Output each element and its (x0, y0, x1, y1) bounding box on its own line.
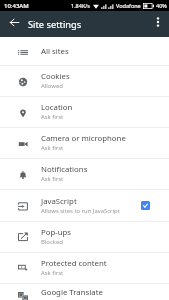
staticText: Vodafone (116, 2, 141, 9)
staticText: Pop-ups (41, 227, 72, 238)
staticText: Ask first (41, 175, 64, 183)
staticText: Allowed (41, 82, 63, 90)
staticText: Site settings (28, 18, 82, 31)
staticText: Location (41, 102, 73, 113)
staticText: 10:43AM (4, 2, 29, 10)
button[interactable]: Location (0, 97, 169, 128)
staticText: Ask first (41, 144, 64, 152)
button[interactable]: Notifications (0, 159, 169, 190)
button[interactable]: All sites (0, 37, 169, 66)
button[interactable]: Google Translate (0, 284, 169, 300)
staticText: Cookies (41, 71, 70, 82)
staticText: JavaScript (41, 196, 77, 207)
staticText: Protected content (41, 258, 107, 269)
staticText: Ask first (41, 269, 64, 277)
button[interactable]: More options (147, 11, 169, 33)
button[interactable]: Protected content (0, 253, 169, 284)
button[interactable]: Enable JavaScript (141, 201, 150, 210)
button[interactable]: Cookies (0, 66, 169, 97)
staticText: 1.84K/s (71, 2, 90, 9)
staticText: Blocked (41, 238, 63, 246)
button[interactable]: Pop-ups (0, 222, 169, 253)
button[interactable]: Camera or microphone (0, 128, 169, 159)
staticText: All sites (41, 46, 69, 57)
staticText: Camera or microphone (41, 133, 126, 144)
staticText: Notifications (41, 164, 88, 175)
staticText: 40% (156, 2, 167, 9)
button[interactable]: Navigate up (3, 11, 25, 33)
staticText: Google Translate (41, 287, 103, 298)
staticText: Allows sites to run JavaScript (41, 207, 120, 215)
staticText: Ask first (41, 113, 64, 121)
button[interactable]: JavaScript (0, 191, 169, 222)
